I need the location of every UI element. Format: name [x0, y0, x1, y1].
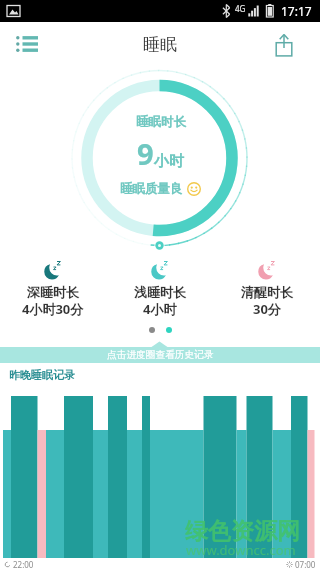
staticText: 4小时	[143, 300, 177, 318]
button[interactable]: Share	[256, 22, 320, 66]
staticText: 深睡时长	[27, 284, 79, 300]
staticText: www.downcc.com	[186, 541, 296, 559]
staticText: 睡眠时长	[136, 114, 186, 130]
staticText: 22:00	[13, 559, 34, 569]
staticText: 点击进度圈查看历史记录	[107, 349, 214, 361]
staticText: 17:17	[281, 3, 312, 19]
staticText: 浅睡时长	[134, 284, 186, 300]
staticText: 9	[137, 134, 154, 173]
button[interactable]: 点击进度圈查看历史记录	[0, 341, 320, 363]
staticText: 睡眠质量良	[120, 181, 183, 197]
staticText: 30分	[253, 300, 281, 318]
staticText: 4小时30分	[22, 300, 84, 318]
staticText: 睡眠	[143, 34, 177, 55]
staticText: 清醒时长	[241, 284, 293, 300]
button[interactable]: List	[0, 22, 54, 66]
staticText: 绿色资源网	[185, 517, 300, 546]
staticText: 小时	[154, 152, 184, 171]
button[interactable]: 浅睡时长	[106, 259, 213, 318]
staticText: 4G	[235, 3, 246, 14]
staticText: 昨晚睡眠记录	[9, 368, 75, 382]
button[interactable]: 清醒时长	[213, 259, 320, 318]
staticText: 07:00	[295, 559, 316, 569]
button[interactable]: 深睡时长	[0, 259, 106, 318]
